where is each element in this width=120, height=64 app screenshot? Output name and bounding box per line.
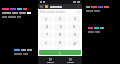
button[interactable]: # <box>68 40 80 46</box>
button[interactable]: Keypad <box>43 56 57 64</box>
button[interactable]: * <box>40 40 52 46</box>
staticText: # <box>73 41 76 46</box>
staticText: 2 <box>59 16 61 21</box>
button[interactable]: 5 <box>54 24 66 30</box>
staticText: 5 <box>60 24 62 29</box>
staticText: Enter phone number <box>40 10 66 14</box>
staticText: 6 <box>73 24 75 29</box>
staticText: 7 <box>46 32 48 37</box>
button[interactable]: Contacts <box>63 56 77 64</box>
button[interactable]: 7 <box>40 32 52 38</box>
staticText: 4 <box>46 24 48 29</box>
button[interactable]: 0 <box>54 40 66 46</box>
staticText: 9 <box>74 32 76 37</box>
staticText: 0 <box>59 40 61 45</box>
button[interactable]: 1 <box>40 16 52 22</box>
button[interactable]: Enter phone number <box>40 9 80 15</box>
staticText: 8 <box>59 32 61 37</box>
button[interactable]: 6 <box>68 24 80 30</box>
button[interactable]: More options <box>77 5 80 8</box>
button[interactable]: Call <box>39 50 81 55</box>
staticText: 1 <box>45 17 47 22</box>
other: Backspace <box>77 11 80 14</box>
button[interactable]: 4 <box>40 24 52 30</box>
button[interactable]: 2 <box>54 16 66 22</box>
button[interactable]: 9 <box>68 32 80 38</box>
button[interactable]: 3 <box>68 16 80 22</box>
button[interactable]: Menu <box>40 5 43 8</box>
button[interactable]: 8 <box>54 32 66 38</box>
staticText: * <box>45 41 47 46</box>
staticText: 3 <box>74 16 76 21</box>
